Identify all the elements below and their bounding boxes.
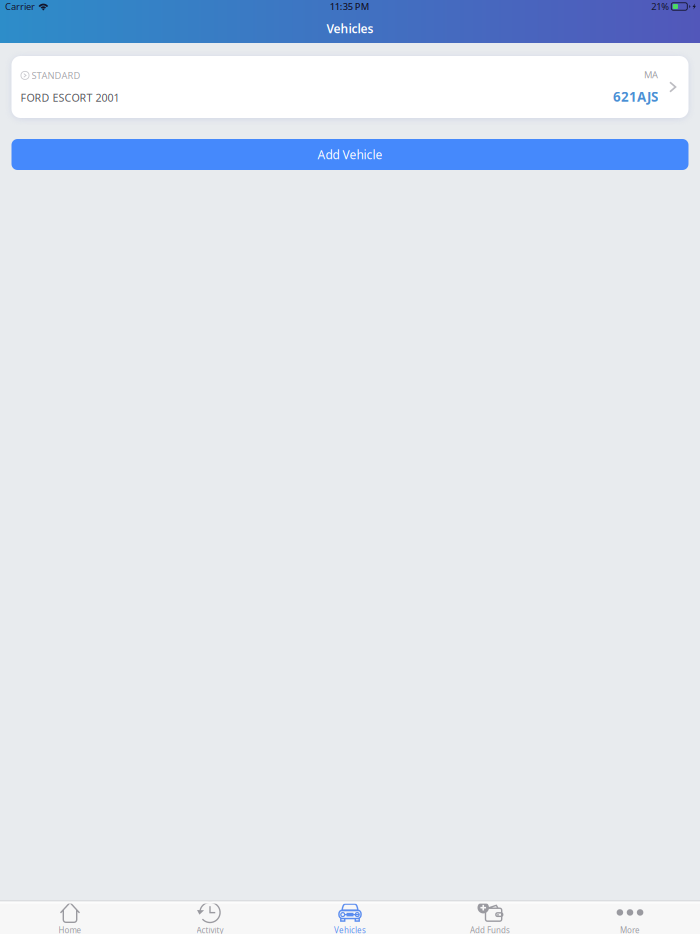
staticText: Add Funds (470, 925, 510, 934)
button[interactable]: Activity (140, 900, 280, 934)
button[interactable]: Add Vehicle (0, 139, 700, 170)
staticText: More (620, 925, 640, 934)
staticText: FORD ESCORT 2001 (20, 91, 119, 105)
staticText: Vehicles (326, 20, 373, 36)
staticText: 21% (651, 0, 669, 13)
button[interactable]: Add Funds (420, 900, 560, 934)
staticText: 11:35 PM (330, 0, 370, 13)
staticText: Vehicles (334, 925, 366, 934)
staticText: STANDARD (31, 69, 80, 82)
button[interactable]: More (560, 900, 700, 934)
staticText: Add Vehicle (317, 146, 382, 162)
button[interactable]: Home (0, 900, 140, 934)
staticText: Home (58, 925, 81, 934)
button[interactable]: Vehicles (280, 900, 420, 934)
staticText: Carrier (5, 0, 35, 13)
staticText: 621AJS (613, 88, 658, 105)
button[interactable]: STANDARD (0, 56, 700, 118)
staticText: MA (644, 68, 658, 81)
staticText: Activity (196, 925, 223, 934)
